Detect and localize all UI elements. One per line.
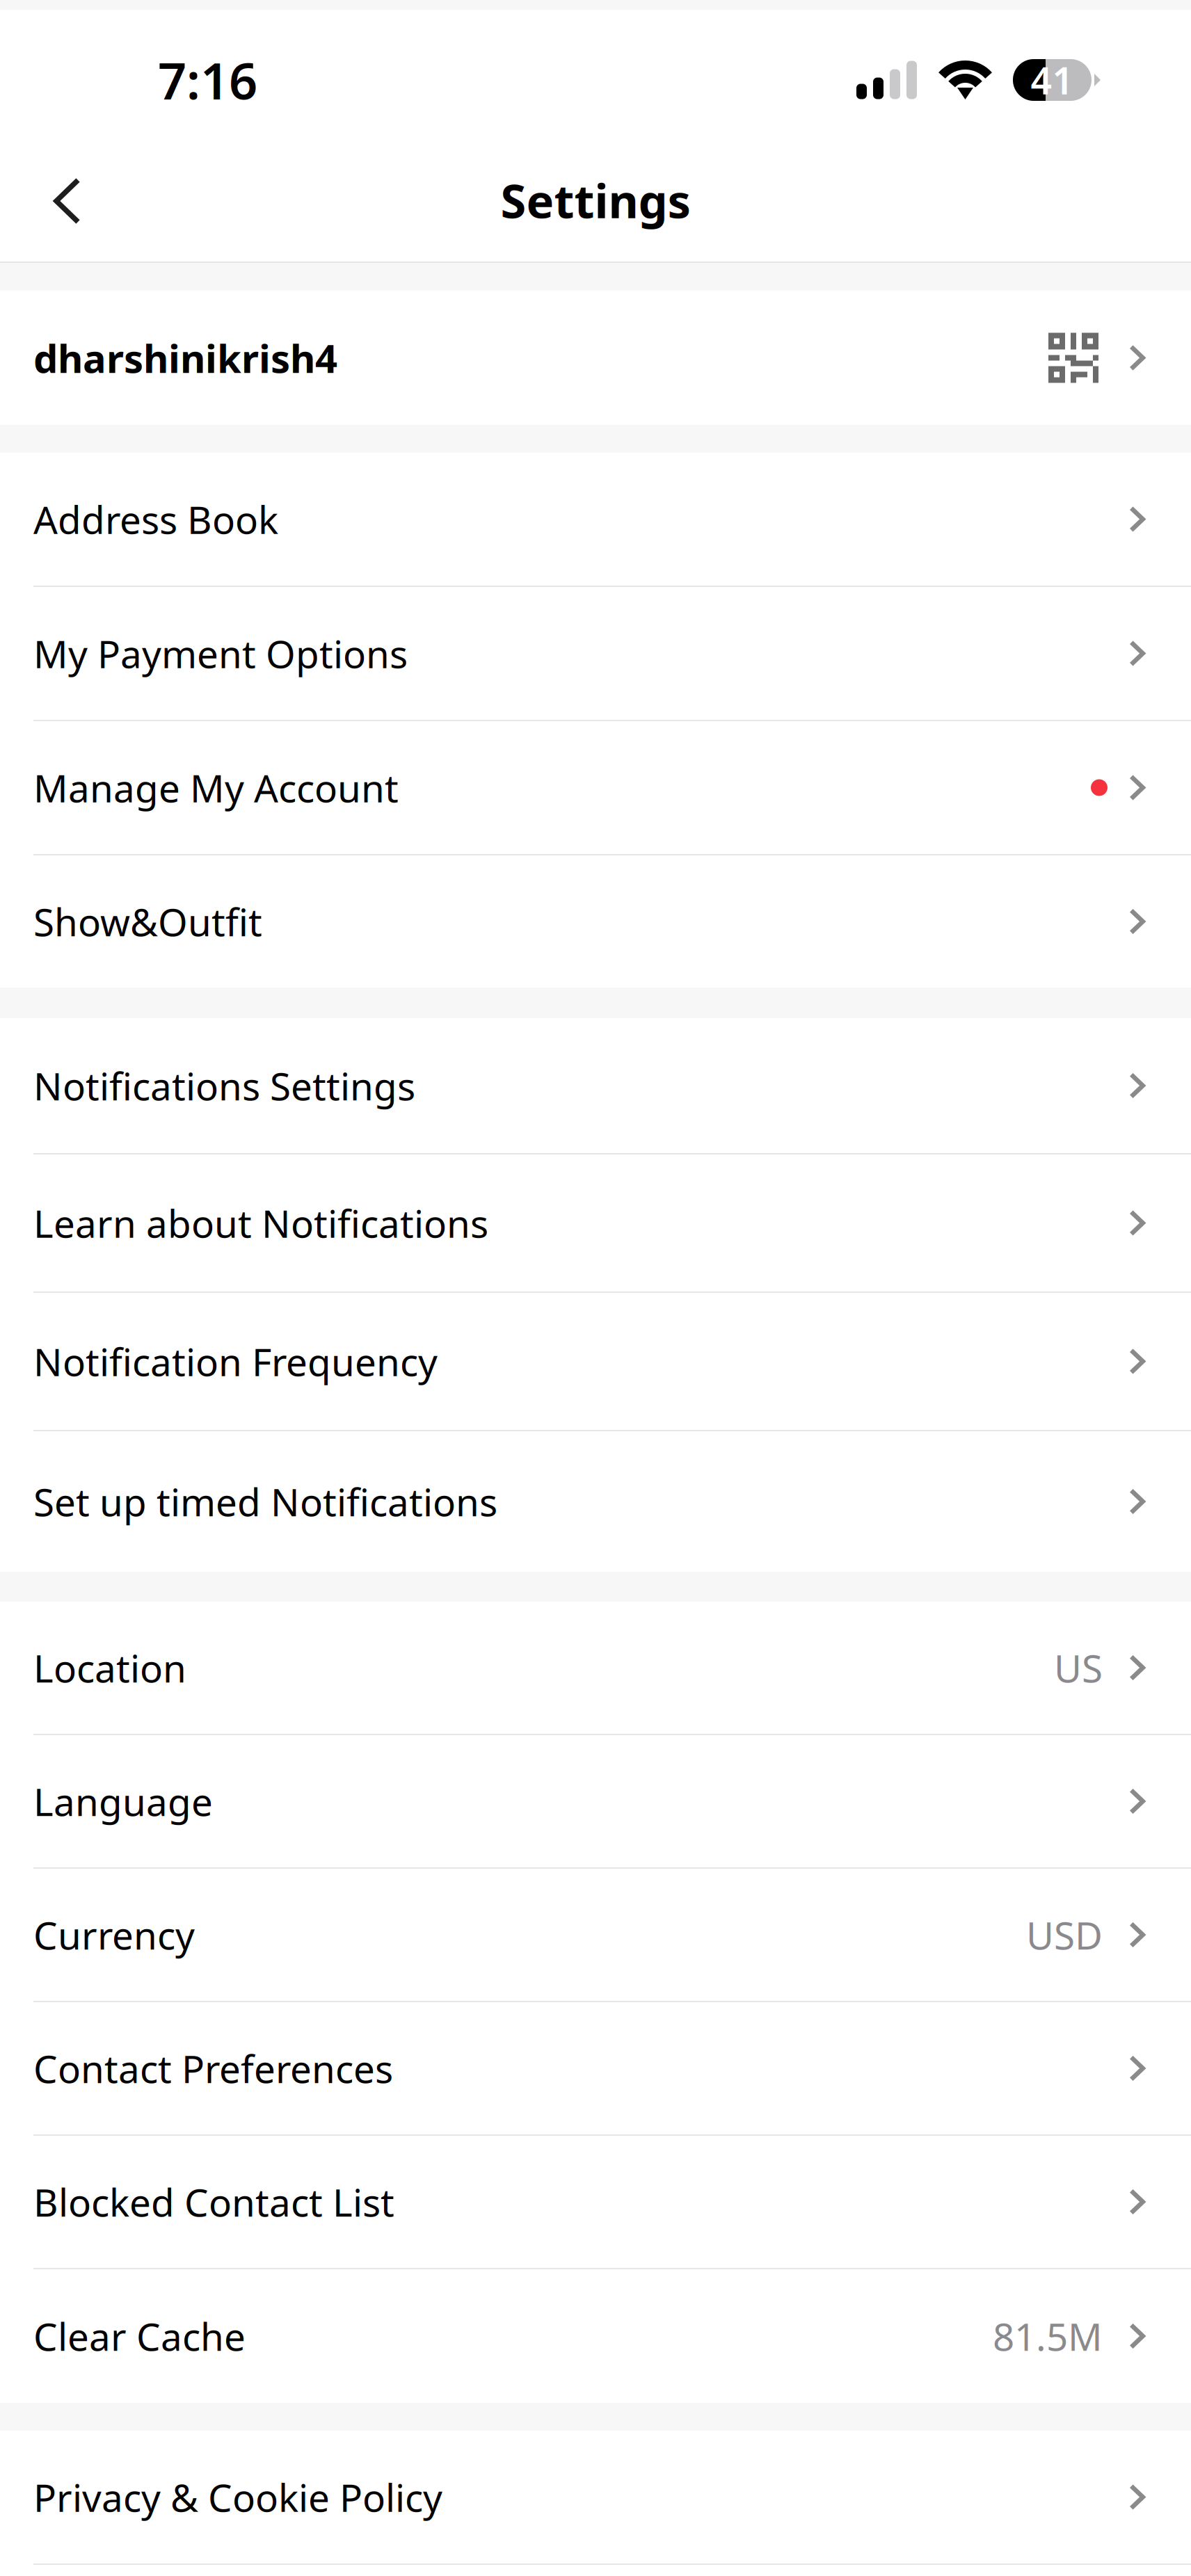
staticText: Settings [501,169,690,231]
button[interactable]: Currency [0,1869,1191,2001]
staticText: Notification Frequency [33,1336,438,1387]
button[interactable]: Clear Cache [0,2269,1191,2403]
staticText: Language [33,1776,213,1826]
staticText: Clear Cache [33,2311,246,2361]
staticText: Currency [33,1910,195,1960]
button[interactable]: Notifications Settings [0,1018,1191,1153]
staticText: USD [1026,1910,1103,1960]
button[interactable]: Language [0,1735,1191,1867]
button[interactable]: Show&Outfit [0,855,1191,988]
staticText: 7:16 [158,47,257,113]
staticText: 81.5M [993,2311,1103,2361]
button[interactable]: Manage My Account [0,721,1191,854]
staticText: US [1054,1642,1103,1693]
staticText: Notifications Settings [33,1060,415,1111]
staticText: Set up timed Notifications [33,1476,497,1527]
staticText: My Payment Options [33,628,408,679]
staticText: Learn about Notifications [33,1198,488,1248]
button[interactable]: Contact Preferences [0,2002,1191,2134]
button[interactable]: Notification Frequency [0,1293,1191,1430]
button[interactable]: Privacy & Cookie Policy [0,2431,1191,2563]
staticText: Manage My Account [33,762,399,813]
button[interactable]: Address Book [0,453,1191,586]
staticText: Contact Preferences [33,2043,393,2094]
button[interactable]: Location [0,1602,1191,1734]
staticText: Blocked Contact List [33,2177,394,2227]
button[interactable]: Blocked Contact List [0,2136,1191,2268]
button[interactable]: Back [0,159,106,242]
staticText: Privacy & Cookie Policy [33,2472,442,2522]
staticText: Address Book [33,494,278,544]
staticText: Show&Outfit [33,896,262,947]
button[interactable]: Set up timed Notifications [0,1431,1191,1572]
staticText: 41 [1031,55,1074,105]
staticText: dharshinikrish4 [33,332,337,384]
button[interactable]: My Payment Options [0,587,1191,720]
button[interactable]: Learn about Notifications [0,1154,1191,1291]
button[interactable]: dharshinikrish4 [0,291,1191,425]
staticText: Location [33,1642,186,1693]
